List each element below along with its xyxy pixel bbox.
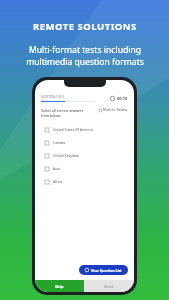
- staticText: United States Of America: [53, 127, 93, 132]
- button[interactable]: Skip: [35, 280, 84, 292]
- other: Timer: [110, 96, 115, 101]
- button[interactable]: Asia: [35, 162, 134, 175]
- staticText: REMOTE SOLUTIONS: [33, 20, 137, 33]
- staticText: Skip: [55, 284, 64, 289]
- staticText: Africa: [53, 179, 63, 184]
- button[interactable]: Next: [84, 280, 134, 292]
- button[interactable]: United States Of America: [35, 123, 134, 136]
- button[interactable]: Africa: [35, 175, 134, 188]
- staticText: QUESTION 1 OF 5: [41, 95, 65, 99]
- staticText: Next: [104, 284, 114, 289]
- staticText: United Kingdom: [53, 153, 80, 158]
- staticText: View Question List: [91, 268, 122, 272]
- staticText: Asia: [53, 166, 60, 171]
- button[interactable]: Mark for Review: [99, 108, 128, 112]
- staticText: 00:15: [117, 96, 128, 101]
- button[interactable]: View Question List: [79, 265, 128, 275]
- staticText: Mark for Review: [103, 108, 128, 112]
- staticText: Multi-format tests including multimedia …: [26, 44, 144, 68]
- staticText: Canada: [53, 140, 66, 145]
- button[interactable]: Canada: [35, 136, 134, 149]
- button[interactable]: United Kingdom: [35, 149, 134, 162]
- staticText: Select all correct answers from below:: [41, 108, 99, 118]
